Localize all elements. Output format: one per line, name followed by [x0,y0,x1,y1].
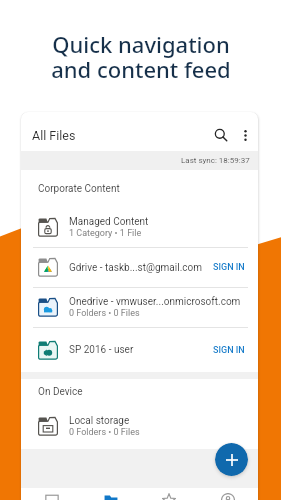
staticText: SP 2016 - user [69,344,134,356]
button[interactable]: Recent [24,488,79,500]
button[interactable]: SP 2016 - user [21,328,258,372]
button[interactable]: Local storage [21,404,258,449]
button[interactable]: Managed Content [21,208,258,247]
staticText: SIGN IN [213,262,245,273]
button[interactable]: Onedrive - vmwuser...onmicrosoft.com [21,288,258,327]
staticText: Onedrive - vmwuser...onmicrosoft.com [69,296,241,308]
button[interactable]: Favorites [141,488,196,500]
staticText: SIGN IN [213,345,245,356]
button[interactable]: Search [207,121,235,149]
button[interactable]: Files [83,488,138,500]
staticText: Corporate Content [38,183,120,195]
staticText: 1 Category • 1 File [69,228,142,239]
staticText: Local storage [69,415,130,427]
button[interactable]: Add [215,443,248,476]
staticText: Gdrive - taskb...st@gmail.com [69,262,202,274]
staticText: On Device [38,386,83,398]
staticText: Managed Content [69,216,149,228]
staticText: 0 Folders • 0 Files [69,308,140,319]
staticText: Last sync: 18:59:37 [181,156,250,165]
button[interactable]: Account [200,488,255,500]
staticText: 0 Folders • 0 Files [69,427,140,438]
button[interactable]: More options [232,122,258,148]
staticText: Quick navigation and content feed [51,29,231,84]
staticText: All Files [32,128,76,143]
button[interactable]: Gdrive - taskb...st@gmail.com [21,248,258,287]
